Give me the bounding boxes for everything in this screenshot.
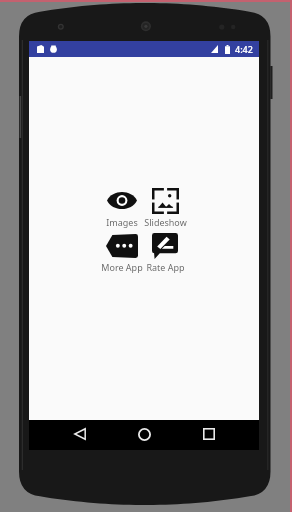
button[interactable]: Slideshow xyxy=(138,187,192,228)
staticText: Rate App xyxy=(146,261,185,273)
button[interactable]: Recents xyxy=(195,420,223,448)
button[interactable]: Images xyxy=(95,187,149,228)
staticText: More App xyxy=(101,261,143,273)
button[interactable]: More App xyxy=(95,232,149,273)
button[interactable]: Home xyxy=(130,420,158,448)
staticText: Images xyxy=(106,216,138,228)
staticText: Slideshow xyxy=(144,216,187,228)
button[interactable]: Rate App xyxy=(138,232,192,273)
button[interactable]: Back xyxy=(66,420,94,448)
staticText: 4:42 xyxy=(235,43,253,55)
